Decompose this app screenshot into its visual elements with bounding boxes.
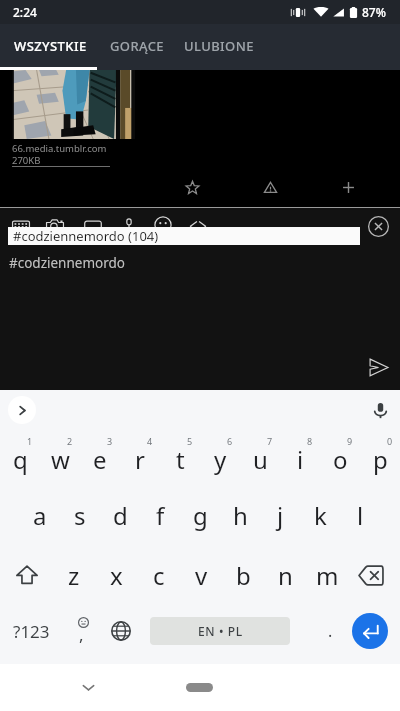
staticText: v bbox=[195, 559, 208, 592]
staticText: 5 bbox=[187, 435, 193, 447]
button[interactable]: b bbox=[222, 547, 264, 603]
staticText: r bbox=[135, 443, 145, 476]
staticText: t bbox=[176, 443, 185, 476]
button[interactable]: k bbox=[300, 487, 340, 543]
button[interactable]: l bbox=[340, 487, 380, 543]
staticText: e bbox=[93, 443, 107, 476]
staticText: 7 bbox=[267, 435, 273, 447]
button[interactable]: h bbox=[220, 487, 260, 543]
button[interactable]: s bbox=[60, 487, 100, 543]
staticText: 4 bbox=[147, 435, 153, 447]
staticText: a bbox=[33, 499, 47, 532]
staticText: 6 bbox=[227, 435, 233, 447]
button[interactable]: 9 bbox=[320, 428, 360, 484]
staticText: m bbox=[316, 559, 339, 592]
button[interactable]: Emoji bbox=[149, 211, 177, 239]
button[interactable]: c bbox=[138, 547, 180, 603]
button[interactable]: a bbox=[20, 487, 60, 543]
button[interactable]: Camera bbox=[41, 211, 69, 239]
button[interactable]: 3 bbox=[80, 428, 120, 484]
button[interactable]: d bbox=[100, 487, 140, 543]
staticText: 0 bbox=[387, 435, 393, 447]
button[interactable]: ULUBIONE bbox=[184, 37, 254, 55]
staticText: d bbox=[113, 499, 128, 532]
staticText: c bbox=[153, 559, 165, 592]
button[interactable]: Home bbox=[186, 683, 213, 692]
button[interactable]: Close bbox=[367, 215, 390, 238]
button[interactable]: Keyboard bbox=[7, 211, 35, 239]
button[interactable]: Enter bbox=[352, 613, 388, 649]
button[interactable]: ?123 bbox=[0, 603, 62, 659]
staticText: 2 bbox=[67, 435, 73, 447]
staticText: x bbox=[110, 559, 123, 592]
button[interactable]: EN • PL bbox=[150, 617, 290, 645]
staticText: q bbox=[13, 443, 28, 476]
button[interactable]: Send bbox=[362, 351, 394, 383]
button[interactable]: v bbox=[180, 547, 222, 603]
button[interactable]: g bbox=[180, 487, 220, 543]
staticText: j bbox=[277, 499, 284, 532]
staticText: n bbox=[278, 559, 293, 592]
staticText: h bbox=[233, 499, 248, 532]
button[interactable]: j bbox=[260, 487, 300, 543]
staticText: z bbox=[68, 559, 80, 592]
staticText: w bbox=[51, 443, 70, 476]
button[interactable]: Add bbox=[333, 172, 363, 202]
button[interactable]: . bbox=[308, 603, 352, 659]
staticText: 9 bbox=[347, 435, 353, 447]
staticText: 2:24 bbox=[13, 4, 37, 20]
button[interactable]: More suggestions bbox=[8, 396, 36, 424]
button[interactable]: GORĄCE bbox=[110, 37, 165, 55]
button[interactable]: 4 bbox=[120, 428, 160, 484]
button[interactable]: 6 bbox=[200, 428, 240, 484]
button[interactable]: Code bbox=[184, 211, 212, 239]
staticText: 3 bbox=[107, 435, 113, 447]
button[interactable]: Favourite bbox=[177, 172, 207, 202]
button[interactable]: 8 bbox=[280, 428, 320, 484]
staticText: #codziennemordo bbox=[9, 254, 125, 272]
button[interactable]: #codziennemordo (104) bbox=[8, 227, 360, 245]
button[interactable]: 2 bbox=[40, 428, 80, 484]
staticText: b bbox=[236, 559, 251, 592]
staticText: #codziennemordo (104) bbox=[13, 227, 159, 245]
button[interactable]: n bbox=[264, 547, 306, 603]
staticText: 270KB bbox=[12, 154, 41, 167]
button[interactable]: WSZYSTKIE bbox=[14, 37, 87, 55]
button[interactable]: Emoji bbox=[62, 603, 106, 659]
button[interactable]: 7 bbox=[240, 428, 280, 484]
staticText: g bbox=[193, 499, 208, 532]
button[interactable]: Hide keyboard bbox=[72, 671, 104, 703]
button[interactable]: Report bbox=[255, 172, 285, 202]
staticText: 1 bbox=[27, 435, 33, 447]
button[interactable]: z bbox=[52, 547, 95, 603]
button[interactable]: Backspace bbox=[348, 547, 400, 603]
staticText: 66.media.tumblr.com bbox=[12, 142, 107, 155]
staticText: f bbox=[156, 499, 165, 532]
button[interactable]: Change language bbox=[106, 603, 150, 659]
staticText: ?123 bbox=[13, 620, 50, 643]
button[interactable]: Gallery bbox=[79, 211, 107, 239]
button[interactable]: m bbox=[306, 547, 348, 603]
button[interactable]: f bbox=[140, 487, 180, 543]
button[interactable]: 5 bbox=[160, 428, 200, 484]
staticText: s bbox=[74, 499, 86, 532]
staticText: y bbox=[214, 443, 227, 476]
staticText: l bbox=[357, 499, 364, 532]
staticText: 8 bbox=[307, 435, 313, 447]
staticText: , bbox=[79, 623, 84, 646]
staticText: p bbox=[373, 443, 388, 476]
staticText: EN • PL bbox=[198, 623, 243, 639]
button[interactable]: Voice input bbox=[366, 396, 394, 424]
button[interactable]: 0 bbox=[360, 428, 400, 484]
staticText: . bbox=[328, 620, 333, 642]
button[interactable]: Shift bbox=[0, 547, 52, 603]
staticText: u bbox=[253, 443, 268, 476]
staticText: 87% bbox=[362, 4, 386, 20]
staticText: i bbox=[297, 443, 304, 476]
button[interactable]: 1 bbox=[0, 428, 40, 484]
staticText: o bbox=[333, 443, 348, 476]
staticText: k bbox=[314, 499, 327, 532]
button[interactable]: Attach bbox=[115, 211, 143, 239]
button[interactable]: x bbox=[95, 547, 138, 603]
